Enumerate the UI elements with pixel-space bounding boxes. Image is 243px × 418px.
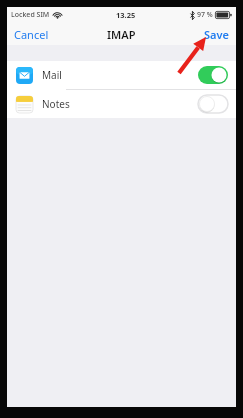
staticText: Cancel: [14, 27, 49, 42]
staticText: 13.25: [116, 10, 136, 20]
staticText: 97 %: [197, 10, 213, 20]
staticText: IMAP: [107, 27, 136, 42]
button[interactable]: Cancel: [7, 24, 56, 45]
staticText: Notes: [42, 97, 70, 111]
button[interactable]: Notes: [7, 90, 236, 118]
button[interactable]: Save: [197, 24, 236, 45]
button[interactable]: On: [198, 66, 228, 84]
button[interactable]: Mail: [7, 61, 236, 89]
staticText: Mail: [42, 68, 62, 82]
staticText: Save: [204, 27, 229, 42]
staticText: Locked SIM: [11, 10, 50, 20]
button[interactable]: Off: [198, 95, 228, 113]
